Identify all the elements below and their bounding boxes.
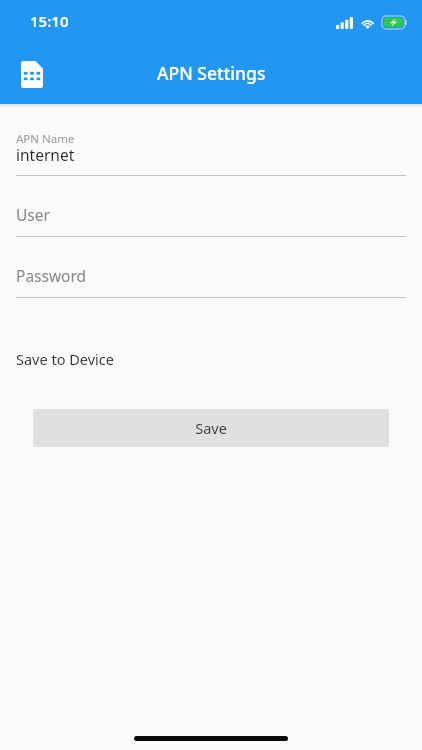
staticText: APN Name [16, 131, 75, 147]
staticText: APN Settings [157, 61, 266, 85]
staticText: internet [16, 144, 75, 165]
button[interactable]: internet [0, 144, 422, 175]
button[interactable]: SIM card [8, 50, 56, 98]
staticText: Password [16, 265, 87, 286]
staticText: 15:10 [30, 11, 69, 31]
button[interactable]: Save [33, 409, 389, 447]
button[interactable]: Password [0, 251, 422, 297]
staticText: User [16, 204, 50, 225]
staticText: Save [195, 418, 227, 438]
button[interactable]: User [0, 190, 422, 236]
staticText: Save to Device [16, 349, 114, 369]
